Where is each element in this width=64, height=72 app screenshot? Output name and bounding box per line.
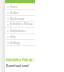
button[interactable]: My Account [5, 16, 35, 22]
staticText: Settings [10, 41, 20, 45]
button[interactable]: Home [5, 4, 35, 10]
button[interactable]: Notifications [5, 28, 35, 34]
staticText: Schedule a Pick-up [6, 58, 33, 62]
button[interactable]: Schedule a Pick-up Request [5, 22, 35, 28]
staticText: Help [10, 35, 16, 39]
staticText: My Account [10, 17, 25, 21]
staticText: Home [10, 5, 18, 9]
staticText: Notifications [10, 29, 26, 33]
button[interactable]: Help [5, 34, 35, 40]
button[interactable]: Settings [5, 40, 35, 46]
staticText: Download now! [6, 64, 29, 68]
staticText: Orders [10, 11, 19, 15]
button[interactable]: Orders [5, 10, 35, 16]
staticText: Schedule a Pick-up Request [10, 22, 35, 28]
